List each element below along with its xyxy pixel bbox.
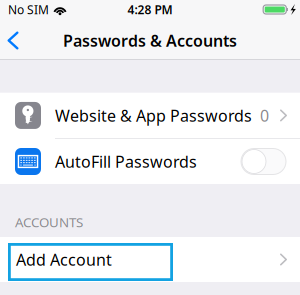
button[interactable]: AutoFill Passwords — [241, 148, 286, 174]
staticText: 4:28 PM — [127, 1, 172, 17]
button[interactable]: Add Account — [0, 237, 300, 282]
staticText: Add Account — [16, 249, 112, 270]
staticText: No SIM — [8, 1, 49, 17]
staticText: Website & App Passwords — [55, 105, 252, 126]
staticText: 0 — [260, 105, 269, 126]
staticText: Passwords & Accounts — [63, 30, 237, 51]
button[interactable]: Back — [0, 23, 26, 57]
button[interactable]: Website & App Passwords — [0, 93, 300, 138]
staticText: AutoFill Passwords — [55, 151, 197, 172]
staticText: ACCOUNTS — [15, 213, 83, 231]
